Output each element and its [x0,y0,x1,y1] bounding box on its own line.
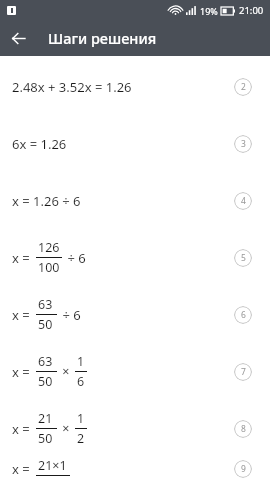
button[interactable]: Step 4 [234,192,252,210]
staticText: 5 [241,252,246,264]
staticText: 50 [38,430,55,447]
staticText: 50 [38,316,55,333]
button[interactable]: Step 2 [234,78,252,96]
staticText: 21×1 [38,457,68,474]
staticText: 7 [241,366,246,378]
staticText: 2 [77,430,85,447]
staticText: × [59,363,73,380]
button[interactable]: Step 7 [234,363,252,381]
staticText: x = [12,363,34,381]
button[interactable]: x = [0,457,270,480]
button[interactable]: Step 5 [234,249,252,267]
staticText: x = [12,420,34,438]
staticText: 1 [77,353,85,370]
staticText: x = 1.26 ÷ 6 [12,192,81,210]
button[interactable]: x = 1.26 ÷ 6 [0,172,270,229]
button[interactable]: Step 9 [234,460,252,478]
staticText: 63 [38,296,55,313]
staticText: ÷ 6 [64,249,86,267]
staticText: 126 [38,239,60,256]
button[interactable]: 6x = 1.26 [0,115,270,172]
button[interactable]: x = [0,286,270,343]
button[interactable]: Step 8 [234,420,252,438]
staticText: 21 [38,410,55,427]
button[interactable]: x = [0,400,270,457]
staticText: 2 [241,81,246,93]
staticText: 9 [241,463,246,475]
button[interactable]: Step 6 [234,306,252,324]
button[interactable]: x = [0,229,270,286]
staticText: ÷ 6 [59,306,81,324]
button[interactable]: Step 3 [234,135,252,153]
staticText: 63 [38,353,55,370]
staticText: 50 [38,373,55,390]
staticText: 2.48x + 3.52x = 1.26 [12,78,132,96]
button[interactable]: x = [0,343,270,400]
staticText: 6x = 1.26 [12,135,67,153]
staticText: 21:00 [239,4,264,17]
staticText: 1 [77,410,85,427]
staticText: 3 [241,138,246,150]
button[interactable]: Back [0,20,36,56]
staticText: 4 [241,195,246,207]
staticText: 8 [241,423,246,435]
staticText: 6 [241,309,246,321]
staticText: 100 [38,259,60,276]
button[interactable]: 2.48x + 3.52x = 1.26 [0,58,270,115]
staticText: Шаги решения [48,28,157,48]
staticText: × [59,420,73,437]
staticText: x = [12,249,34,267]
staticText: x = [12,306,34,324]
staticText: x = [12,460,34,478]
staticText: 6 [77,373,85,390]
staticText: 19% [200,5,218,17]
